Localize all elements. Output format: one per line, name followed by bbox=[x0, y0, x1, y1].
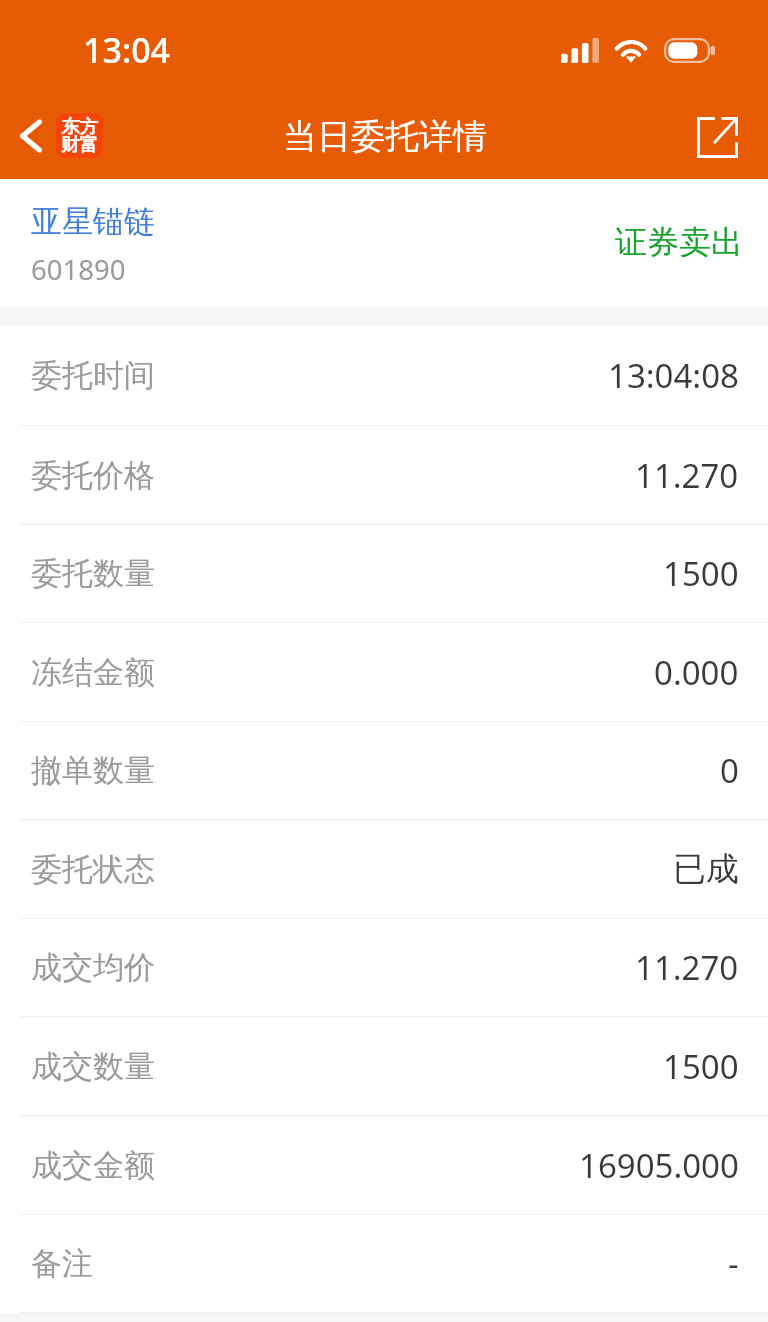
button[interactable]: 委托价格 bbox=[0, 426, 768, 524]
staticText: 11.270 bbox=[635, 453, 739, 498]
button[interactable]: 委托时间 bbox=[0, 326, 768, 425]
button[interactable]: 亚星锚链 bbox=[0, 179, 768, 307]
button[interactable]: 撤单数量 bbox=[0, 722, 768, 819]
button[interactable]: Back bbox=[0, 106, 113, 171]
staticText: 1500 bbox=[663, 551, 739, 596]
button[interactable]: 委托状态 bbox=[0, 820, 768, 918]
staticText: 16905.000 bbox=[579, 1143, 739, 1188]
staticText: - bbox=[728, 1241, 739, 1286]
staticText: 亚星锚链 bbox=[31, 202, 155, 241]
button[interactable]: 成交均价 bbox=[0, 919, 768, 1016]
staticText: 0.000 bbox=[654, 650, 739, 695]
staticText: 0 bbox=[720, 748, 739, 793]
staticText: 成交金额 bbox=[31, 1146, 155, 1185]
button[interactable]: 冻结金额 bbox=[0, 623, 768, 721]
button[interactable]: 成交数量 bbox=[0, 1017, 768, 1115]
button[interactable]: 成交金额 bbox=[0, 1116, 768, 1214]
staticText: 撤单数量 bbox=[31, 751, 155, 790]
button[interactable]: 委托数量 bbox=[0, 525, 768, 622]
staticText: 委托价格 bbox=[31, 456, 155, 495]
staticText: 601890 bbox=[31, 251, 126, 288]
staticText: 证券卖出 bbox=[615, 222, 743, 262]
staticText: 成交均价 bbox=[31, 948, 155, 987]
staticText: 东方 财富 bbox=[61, 115, 98, 156]
staticText: 1500 bbox=[663, 1044, 739, 1089]
staticText: 委托状态 bbox=[31, 850, 155, 889]
button[interactable]: Share bbox=[681, 104, 768, 173]
button[interactable]: 备注 bbox=[0, 1215, 768, 1312]
staticText: 13:04 bbox=[83, 27, 171, 73]
staticText: 冻结金额 bbox=[31, 653, 155, 692]
staticText: 备注 bbox=[31, 1244, 93, 1283]
staticText: 成交数量 bbox=[31, 1047, 155, 1086]
staticText: 13:04:08 bbox=[608, 353, 739, 398]
staticText: 委托数量 bbox=[31, 554, 155, 593]
staticText: 11.270 bbox=[635, 945, 739, 990]
staticText: 已成 bbox=[673, 848, 739, 890]
staticText: 当日委托详情 bbox=[283, 115, 487, 158]
staticText: 委托时间 bbox=[31, 356, 155, 395]
